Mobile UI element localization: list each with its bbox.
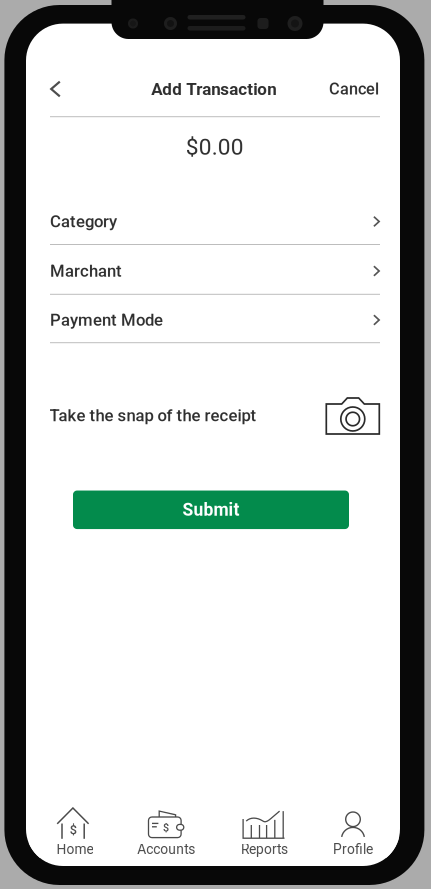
staticText: Take the snap of the receipt <box>49 406 256 425</box>
staticText: Cancel <box>329 79 379 99</box>
button[interactable]: Submit <box>73 491 349 529</box>
button[interactable]: Reports <box>219 786 311 858</box>
button[interactable]: $ <box>29 786 121 858</box>
staticText: $ <box>70 823 77 837</box>
button[interactable]: Payment Mode <box>50 298 380 342</box>
button[interactable]: Marchant <box>50 249 380 293</box>
button[interactable]: Category <box>50 199 380 243</box>
staticText: Submit <box>182 500 239 520</box>
staticText: Profile <box>333 841 373 857</box>
staticText: Category <box>50 212 117 231</box>
button[interactable]: Take a photo of the receipt <box>322 393 384 439</box>
staticText: Reports <box>241 841 288 857</box>
staticText: $0.00 <box>186 134 244 160</box>
staticText: Marchant <box>50 261 122 281</box>
staticText: $ <box>163 822 169 834</box>
staticText: Payment Mode <box>50 310 163 330</box>
staticText: Home <box>56 841 93 857</box>
button[interactable]: $ <box>120 786 212 858</box>
staticText: Add Transaction <box>151 79 276 99</box>
staticText: Accounts <box>137 841 195 857</box>
button[interactable]: Back <box>37 71 73 107</box>
button[interactable]: Cancel <box>311 71 379 107</box>
button[interactable]: Profile <box>307 786 399 858</box>
